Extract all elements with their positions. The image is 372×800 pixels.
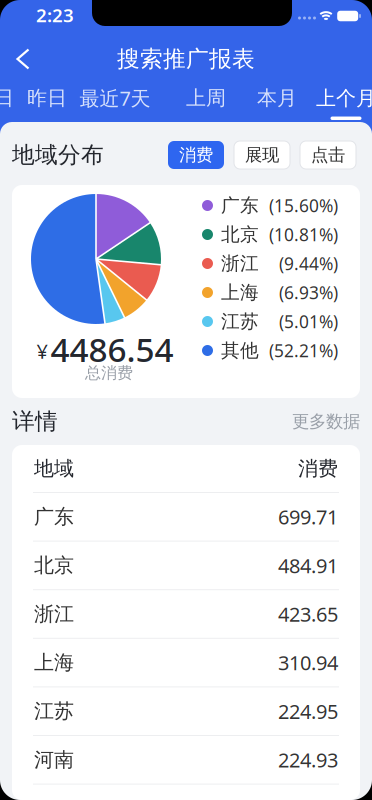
staticText: 更多数据 xyxy=(292,411,360,432)
staticText: 上海 xyxy=(34,650,74,675)
staticText: 搜索推广报表 xyxy=(117,45,255,73)
staticText: (15.60%) xyxy=(269,194,338,217)
staticText: 北京 xyxy=(34,553,74,578)
staticText: 310.94 xyxy=(278,649,338,676)
staticText: 江苏 xyxy=(221,310,259,333)
staticText: 224.95 xyxy=(278,698,338,724)
staticText: 广东 xyxy=(34,504,74,529)
staticText: 广东 xyxy=(221,194,259,217)
button[interactable]: 本月 xyxy=(257,86,297,110)
staticText: 4486.54 xyxy=(50,327,173,371)
button[interactable]: 更多数据 xyxy=(292,411,360,432)
staticText: 上周 xyxy=(186,86,226,110)
staticText: (52.21%) xyxy=(269,339,338,362)
staticText: (10.81%) xyxy=(269,223,338,246)
button[interactable]: 日 xyxy=(0,86,14,110)
button[interactable]: 上个月 xyxy=(316,86,372,120)
staticText: 484.91 xyxy=(278,552,338,579)
staticText: 河南 xyxy=(34,747,74,772)
button[interactable]: 上周 xyxy=(186,86,226,110)
staticText: 224.93 xyxy=(278,746,338,773)
staticText: 其他 xyxy=(221,339,259,362)
button[interactable]: 消费 xyxy=(168,141,224,169)
staticText: (6.93%) xyxy=(279,281,338,304)
staticText: 北京 xyxy=(221,223,259,246)
staticText: 消费 xyxy=(298,456,338,481)
staticText: 地域 xyxy=(34,456,74,481)
button[interactable]: 最近7天 xyxy=(79,85,150,111)
staticText: 点击 xyxy=(311,144,345,166)
staticText: (9.44%) xyxy=(279,252,338,275)
staticText: 423.65 xyxy=(278,601,338,627)
staticText: 昨日 xyxy=(27,86,67,110)
staticText: 最近7天 xyxy=(79,85,150,111)
button[interactable]: Back xyxy=(1,35,44,82)
staticText: (5.01%) xyxy=(279,310,338,333)
button[interactable]: 点击 xyxy=(300,141,356,169)
staticText: 展现 xyxy=(245,144,279,166)
staticText: 日 xyxy=(0,86,14,110)
staticText: 2:23 xyxy=(36,3,74,27)
staticText: 浙江 xyxy=(221,252,259,275)
staticText: 浙江 xyxy=(34,602,74,626)
staticText: 总消费 xyxy=(85,363,133,383)
staticText: 699.71 xyxy=(278,503,338,530)
staticText: 上海 xyxy=(221,281,259,304)
staticText: 详情 xyxy=(12,408,58,435)
staticText: 地域分布 xyxy=(12,141,104,169)
staticText: 江苏 xyxy=(34,699,74,723)
button[interactable]: 展现 xyxy=(234,141,290,169)
staticText: 上个月 xyxy=(316,86,372,111)
staticText: 消费 xyxy=(179,144,213,166)
staticText: ¥ xyxy=(36,338,47,364)
staticText: 本月 xyxy=(257,86,297,110)
button[interactable]: 昨日 xyxy=(27,86,67,110)
